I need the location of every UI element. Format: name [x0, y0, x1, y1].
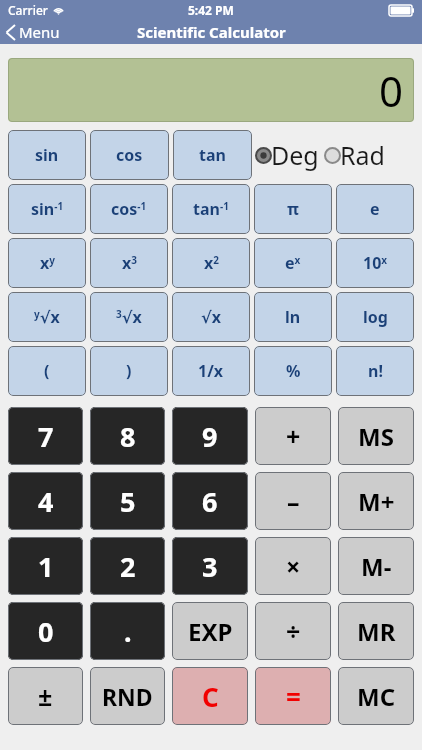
- button[interactable]: 4: [8, 472, 83, 530]
- staticText: 0: [379, 62, 404, 119]
- button[interactable]: ln: [254, 292, 332, 342]
- button[interactable]: .: [90, 602, 165, 660]
- staticText: .: [124, 613, 132, 650]
- staticText: 1: [38, 548, 54, 585]
- button[interactable]: 1: [8, 537, 83, 595]
- button[interactable]: Rad: [325, 138, 385, 172]
- staticText: %: [286, 360, 301, 382]
- staticText: 3: [202, 548, 218, 585]
- staticText: 1/x: [198, 360, 224, 382]
- button[interactable]: tan-1: [172, 184, 250, 234]
- button[interactable]: Menu: [0, 20, 68, 44]
- button[interactable]: =: [255, 667, 331, 725]
- button[interactable]: tan: [173, 130, 252, 180]
- button[interactable]: ex: [254, 238, 332, 288]
- staticText: ): [126, 360, 132, 382]
- staticText: 5: [120, 483, 136, 520]
- button[interactable]: log: [336, 292, 414, 342]
- button[interactable]: MS: [338, 407, 414, 465]
- button[interactable]: cos: [90, 130, 169, 180]
- staticText: RND: [102, 681, 153, 712]
- staticText: Rad: [340, 138, 385, 172]
- staticText: 3√x: [116, 306, 142, 328]
- button[interactable]: xy: [8, 238, 86, 288]
- button[interactable]: y√x: [8, 292, 86, 342]
- button[interactable]: ): [90, 346, 168, 396]
- button[interactable]: Deg: [256, 138, 319, 172]
- staticText: Carrier: [8, 2, 48, 18]
- button[interactable]: 2: [90, 537, 165, 595]
- button[interactable]: ±: [8, 667, 83, 725]
- button[interactable]: MR: [338, 602, 414, 660]
- staticText: ÷: [286, 614, 301, 648]
- staticText: C: [202, 679, 219, 714]
- staticText: –: [287, 484, 300, 518]
- staticText: M-: [361, 550, 392, 583]
- staticText: EXP: [188, 615, 233, 648]
- staticText: xy: [40, 252, 55, 274]
- button[interactable]: M+: [338, 472, 414, 530]
- button[interactable]: 5: [90, 472, 165, 530]
- button[interactable]: ×: [255, 537, 331, 595]
- button[interactable]: +: [255, 407, 331, 465]
- button[interactable]: π: [254, 184, 332, 234]
- button[interactable]: 3: [172, 537, 248, 595]
- staticText: y√x: [34, 306, 60, 328]
- button[interactable]: –: [255, 472, 331, 530]
- button[interactable]: 8: [90, 407, 165, 465]
- button[interactable]: sin-1: [8, 184, 86, 234]
- button[interactable]: EXP: [172, 602, 248, 660]
- staticText: x2: [204, 252, 219, 274]
- staticText: 9: [202, 418, 218, 455]
- button[interactable]: 6: [172, 472, 248, 530]
- button[interactable]: M-: [338, 537, 414, 595]
- button[interactable]: cos-1: [90, 184, 168, 234]
- button[interactable]: 7: [8, 407, 83, 465]
- staticText: √x: [201, 306, 221, 328]
- button[interactable]: e: [336, 184, 414, 234]
- staticText: 0: [38, 613, 54, 650]
- button[interactable]: x2: [172, 238, 250, 288]
- button[interactable]: √x: [172, 292, 250, 342]
- staticText: sin: [35, 144, 59, 166]
- staticText: 5:42 PM: [188, 2, 234, 18]
- staticText: cos: [116, 144, 143, 166]
- button[interactable]: 0: [8, 602, 83, 660]
- staticText: Deg: [271, 138, 319, 172]
- button[interactable]: %: [254, 346, 332, 396]
- button[interactable]: n!: [336, 346, 414, 396]
- staticText: tan: [199, 144, 226, 166]
- staticText: e: [370, 198, 380, 220]
- staticText: MS: [358, 420, 394, 453]
- button[interactable]: 3√x: [90, 292, 168, 342]
- button[interactable]: 1/x: [172, 346, 250, 396]
- button[interactable]: 10x: [336, 238, 414, 288]
- staticText: cos-1: [111, 198, 147, 220]
- staticText: Menu: [19, 22, 60, 42]
- button[interactable]: ÷: [255, 602, 331, 660]
- button[interactable]: 9: [172, 407, 248, 465]
- button[interactable]: C: [172, 667, 248, 725]
- staticText: 6: [202, 483, 218, 520]
- staticText: log: [363, 306, 388, 328]
- staticText: (: [44, 360, 50, 382]
- staticText: 4: [38, 483, 54, 520]
- button[interactable]: MC: [338, 667, 414, 725]
- staticText: sin-1: [31, 198, 64, 220]
- button[interactable]: sin: [8, 130, 86, 180]
- staticText: 8: [120, 418, 136, 455]
- staticText: 10x: [363, 252, 388, 274]
- button[interactable]: x3: [90, 238, 168, 288]
- staticText: 2: [120, 548, 136, 585]
- staticText: +: [286, 419, 301, 453]
- staticText: tan-1: [193, 198, 229, 220]
- staticText: ±: [38, 679, 53, 713]
- staticText: 7: [38, 418, 54, 455]
- staticText: x3: [122, 252, 137, 274]
- staticText: MR: [357, 615, 396, 648]
- staticText: Scientific Calculator: [137, 22, 286, 42]
- staticText: =: [286, 679, 301, 714]
- staticText: ×: [286, 549, 301, 583]
- button[interactable]: RND: [90, 667, 165, 725]
- button[interactable]: (: [8, 346, 86, 396]
